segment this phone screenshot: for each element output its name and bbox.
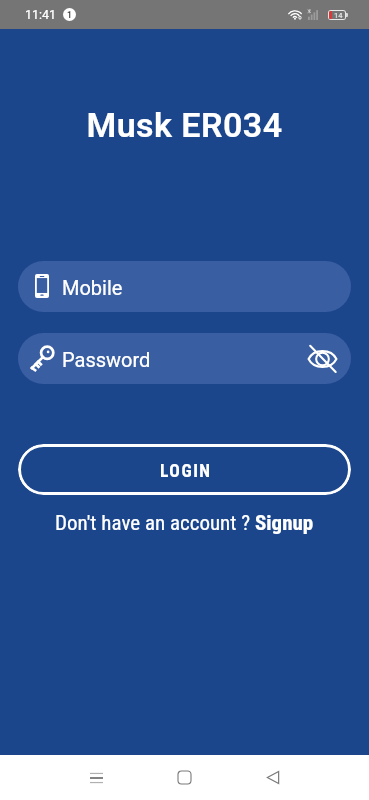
button[interactable]: Mobile [18,261,351,312]
button[interactable]: Password [18,333,351,384]
button[interactable]: Recent apps [74,755,119,800]
staticText: 1 [67,10,72,20]
button[interactable]: Don't have an account ? [0,511,369,536]
staticText: Don't have an account ? [55,511,255,536]
button[interactable]: Show password [300,337,344,381]
button[interactable]: LOGIN [18,444,351,495]
staticText: LOGIN [160,461,212,482]
staticText: 11:41 [25,7,57,22]
button[interactable]: Back [250,755,295,800]
button[interactable]: Home [162,755,207,800]
staticText: Mobile [62,276,123,299]
staticText: Musk ER034 [0,105,369,145]
staticText: 14 [334,11,343,19]
staticText: Signup [255,511,314,536]
staticText: Password [62,348,151,371]
